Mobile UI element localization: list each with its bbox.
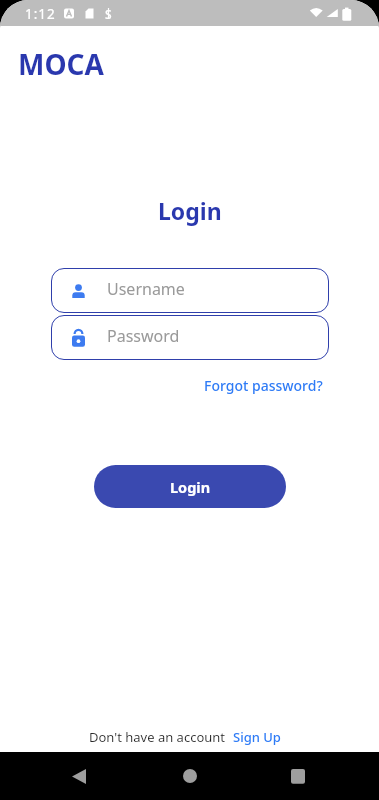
button[interactable] — [176, 762, 204, 790]
staticText: Login — [158, 195, 222, 226]
button[interactable]: Username — [51, 268, 329, 313]
button[interactable] — [284, 762, 312, 790]
staticText: S — [105, 6, 112, 22]
staticText: Password — [107, 325, 180, 347]
staticText: Don't have an account — [89, 728, 226, 746]
staticText: Login — [170, 477, 211, 497]
button[interactable] — [65, 762, 93, 790]
staticText: 1:12 — [25, 5, 56, 23]
button[interactable]: Sign Up — [233, 728, 281, 746]
staticText: MOCA — [18, 45, 104, 83]
staticText: Username — [107, 278, 185, 300]
button[interactable]: Password — [51, 315, 329, 360]
button[interactable]: Forgot password? — [204, 376, 323, 395]
button[interactable]: Login — [94, 465, 286, 508]
